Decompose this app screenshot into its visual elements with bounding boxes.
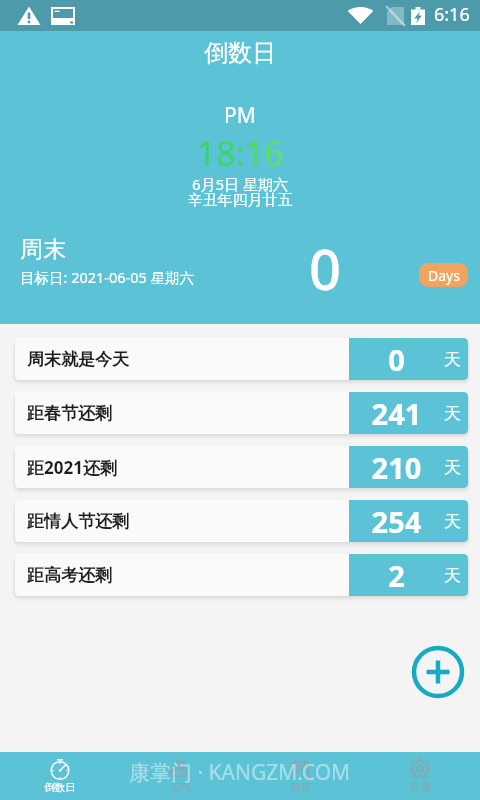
staticText: 天 xyxy=(444,457,461,478)
staticText: 天 xyxy=(444,565,461,586)
button[interactable]: 日历 xyxy=(240,752,360,800)
staticText: 18:16 xyxy=(0,130,480,176)
staticText: 目标日: 2021-06-05 星期六 xyxy=(20,267,195,287)
staticText: 距春节还剩 xyxy=(27,403,112,424)
button[interactable]: 倒数日 xyxy=(0,752,120,800)
staticText: 辛丑年四月廿五 xyxy=(0,191,480,210)
button[interactable]: 天气 xyxy=(120,752,240,800)
staticText: Days xyxy=(428,266,460,285)
staticText: 距高考还剩 xyxy=(27,565,112,586)
staticText: 6月5日 星期六 xyxy=(0,174,480,194)
button[interactable]: 周末就是今天 xyxy=(15,338,468,380)
staticText: 天气 xyxy=(170,781,191,794)
staticText: 254 xyxy=(349,502,444,541)
staticText: 0 xyxy=(309,230,342,294)
button[interactable]: 距春节还剩 xyxy=(15,392,468,434)
staticText: 康掌门 · KANGZM.COM xyxy=(129,758,351,787)
staticText: 周末就是今天 xyxy=(27,349,129,370)
button[interactable]: Days xyxy=(419,263,468,287)
button[interactable]: 距2021还剩 xyxy=(15,446,468,488)
staticText: 241 xyxy=(349,394,444,433)
staticText: 天 xyxy=(444,403,461,424)
button[interactable]: Add countdown xyxy=(409,643,467,701)
button[interactable]: 距高考还剩 xyxy=(15,554,468,596)
staticText: 距情人节还剩 xyxy=(27,511,129,532)
staticText: 210 xyxy=(349,448,444,487)
staticText: 周末 xyxy=(20,235,66,264)
staticText: 天 xyxy=(444,349,461,370)
button[interactable]: 距情人节还剩 xyxy=(15,500,468,542)
staticText: PM xyxy=(0,101,480,130)
staticText: 6:16 xyxy=(434,2,470,27)
staticText: 倒数日 xyxy=(44,781,76,794)
staticText: 0 xyxy=(349,340,444,379)
staticText: 天 xyxy=(444,511,461,532)
staticText: 日历 xyxy=(290,781,311,794)
button[interactable]: 设置 xyxy=(360,752,480,800)
staticText: 设置 xyxy=(410,781,431,794)
staticText: 2 xyxy=(349,556,444,595)
staticText: 距2021还剩 xyxy=(27,456,117,479)
staticText: 倒数日 xyxy=(0,38,480,68)
